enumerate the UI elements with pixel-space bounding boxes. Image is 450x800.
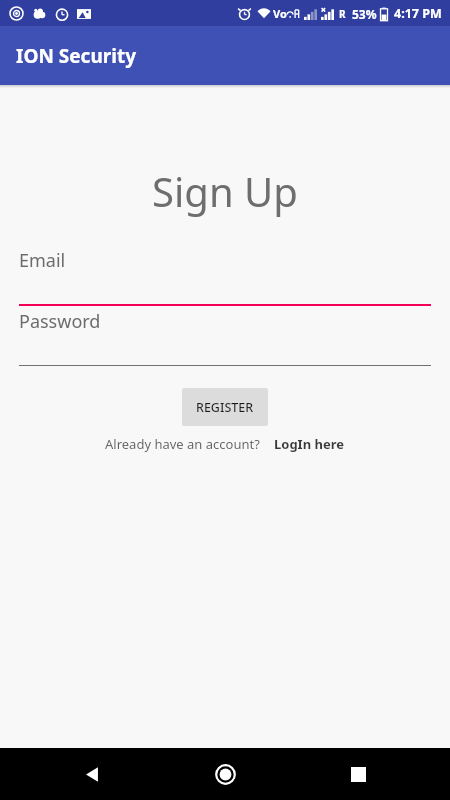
button[interactable]: Home (206, 755, 244, 793)
staticText: LogIn here (274, 435, 345, 453)
staticText: ION Security (16, 43, 137, 69)
button[interactable]: LogIn here (274, 435, 345, 453)
staticText: 4:17 PM (394, 5, 442, 22)
staticText: 53% (352, 6, 377, 22)
button[interactable]: Email (0, 248, 450, 306)
staticText: REGISTER (196, 399, 254, 416)
staticText: Vo (273, 6, 287, 21)
button[interactable]: Back (75, 757, 109, 791)
button[interactable]: REGISTER (182, 388, 268, 426)
staticText: Password (19, 309, 101, 334)
staticText: Email (19, 248, 66, 273)
button[interactable]: Recent apps (341, 757, 375, 791)
button[interactable]: Password (0, 309, 450, 366)
staticText: Already have an account? (105, 435, 260, 453)
staticText: R (339, 7, 346, 21)
staticText: Sign Up (152, 164, 298, 218)
